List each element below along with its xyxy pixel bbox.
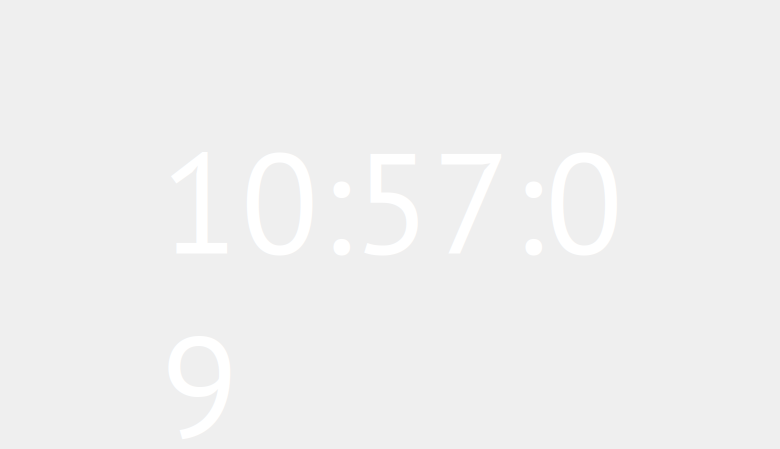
staticText: 10:57:09 [161,108,703,293]
